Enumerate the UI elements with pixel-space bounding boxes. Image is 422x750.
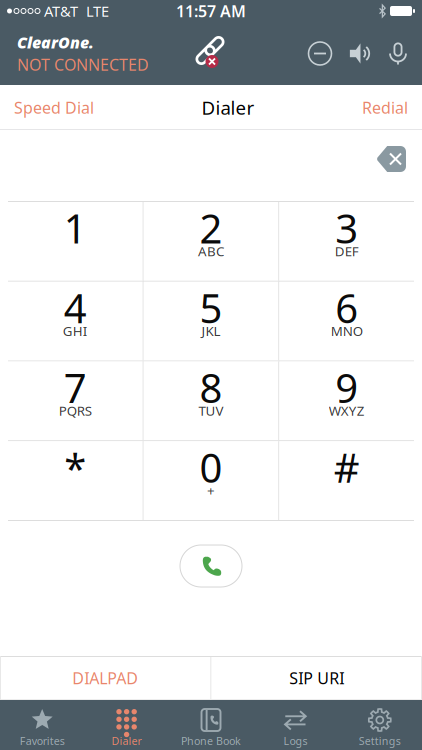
button[interactable]: # xyxy=(279,441,414,520)
staticText: 0 xyxy=(199,441,222,494)
button[interactable]: 6 xyxy=(279,282,414,361)
staticText: GHI xyxy=(63,322,88,340)
staticText: NOT CONNECTED xyxy=(17,54,149,75)
button[interactable]: Connection status xyxy=(194,36,228,70)
staticText: 1 xyxy=(64,201,87,254)
staticText: JKL xyxy=(201,322,220,340)
staticText: WXYZ xyxy=(329,402,365,419)
staticText: Favorites xyxy=(20,734,65,748)
button[interactable]: DIALPAD xyxy=(0,656,210,700)
staticText: 8 xyxy=(199,361,222,414)
staticText: 3 xyxy=(335,201,358,254)
button[interactable]: 4 xyxy=(8,282,143,361)
button[interactable]: 3 xyxy=(279,202,414,281)
button[interactable]: Call xyxy=(180,545,242,587)
staticText: Phone Book xyxy=(181,734,241,748)
button[interactable]: Volume down xyxy=(305,38,335,68)
staticText: # xyxy=(334,441,360,494)
button[interactable]: Favorites xyxy=(0,700,84,750)
button[interactable]: 0 xyxy=(144,441,278,520)
staticText: PQRS xyxy=(59,402,92,419)
staticText: TUV xyxy=(198,402,223,419)
button[interactable]: 2 xyxy=(144,202,278,281)
staticText: Redial xyxy=(362,97,408,118)
staticText: Dialer xyxy=(112,734,142,748)
button[interactable]: 9 xyxy=(279,361,414,440)
button[interactable]: Speed Dial xyxy=(14,97,94,118)
staticText: DEF xyxy=(335,242,359,260)
staticText: Speed Dial xyxy=(14,97,94,118)
button[interactable]: Microphone xyxy=(385,38,411,68)
button[interactable]: Logs xyxy=(253,700,338,750)
staticText: DIALPAD xyxy=(72,667,138,689)
button[interactable]: Delete xyxy=(372,143,409,175)
staticText: Dialer xyxy=(201,95,254,120)
staticText: Logs xyxy=(283,734,307,748)
button[interactable]: Speaker xyxy=(345,38,375,68)
staticText: MNO xyxy=(331,322,363,340)
staticText: 11:57 AM xyxy=(176,0,246,22)
staticText: 5 xyxy=(199,281,222,334)
staticText: 7 xyxy=(64,361,87,414)
button[interactable]: * xyxy=(8,441,143,520)
button[interactable]: Dialer xyxy=(84,700,169,750)
staticText: 4 xyxy=(64,281,87,334)
button[interactable]: 5 xyxy=(144,282,278,361)
button[interactable]: 7 xyxy=(8,361,143,440)
staticText: 9 xyxy=(335,361,358,414)
staticText: 2 xyxy=(199,201,222,254)
staticText: ABC xyxy=(198,242,224,260)
button[interactable]: Redial xyxy=(362,97,408,118)
staticText: + xyxy=(207,481,215,499)
staticText: 6 xyxy=(335,281,358,334)
button[interactable]: Settings xyxy=(338,700,422,750)
staticText: * xyxy=(64,441,86,494)
button[interactable]: 8 xyxy=(144,361,278,440)
staticText: Settings xyxy=(359,734,401,748)
staticText: SIP URI xyxy=(289,667,344,689)
button[interactable]: Phone Book xyxy=(169,700,253,750)
staticText: ClearOne. xyxy=(17,32,94,53)
staticText: AT&T LTE xyxy=(40,1,109,21)
button[interactable]: 1 xyxy=(8,202,143,281)
button[interactable]: SIP URI xyxy=(211,656,422,700)
